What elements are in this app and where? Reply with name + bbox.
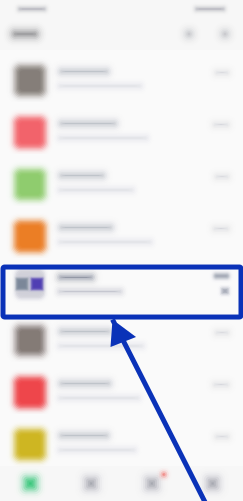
button[interactable] — [0, 310, 243, 362]
button[interactable]: Tab 2 — [61, 466, 122, 501]
button[interactable]: Tab 1 — [0, 466, 61, 501]
button[interactable] — [0, 102, 243, 154]
button[interactable]: Tab 3 — [121, 466, 182, 501]
button[interactable]: Add — [196, 27, 232, 41]
button[interactable] — [0, 206, 243, 258]
button[interactable] — [0, 258, 243, 310]
button[interactable]: Search — [182, 27, 196, 41]
button[interactable] — [0, 362, 243, 414]
button[interactable] — [0, 154, 243, 206]
button[interactable] — [0, 414, 243, 466]
button[interactable] — [0, 50, 243, 102]
button[interactable]: Tab 4 — [182, 466, 243, 501]
